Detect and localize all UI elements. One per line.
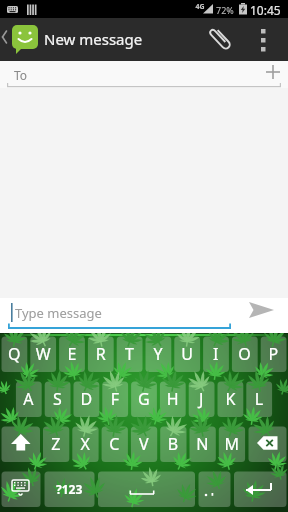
button[interactable] [160, 382, 186, 418]
button[interactable] [261, 337, 287, 373]
button[interactable] [43, 427, 69, 463]
button[interactable] [102, 382, 128, 418]
button[interactable] [199, 472, 231, 508]
button[interactable] [219, 427, 245, 463]
button[interactable] [2, 427, 41, 463]
button[interactable] [117, 337, 143, 373]
button[interactable] [189, 382, 215, 418]
button[interactable] [232, 337, 258, 373]
button[interactable] [98, 472, 195, 508]
button[interactable] [131, 427, 157, 463]
button[interactable] [30, 337, 56, 373]
button[interactable] [146, 337, 172, 373]
button[interactable] [88, 337, 114, 373]
button[interactable] [206, 18, 240, 61]
button[interactable] [45, 382, 71, 418]
button[interactable] [190, 427, 216, 463]
button[interactable] [203, 337, 229, 373]
button[interactable] [246, 382, 272, 418]
button[interactable] [234, 472, 287, 508]
staticText: New message [44, 29, 143, 49]
button[interactable] [59, 337, 85, 373]
button[interactable] [250, 18, 288, 61]
button[interactable] [131, 382, 157, 418]
button[interactable] [160, 427, 186, 463]
button[interactable]: To [0, 61, 288, 88]
button[interactable] [74, 382, 100, 418]
button[interactable] [45, 472, 95, 508]
button[interactable] [0, 18, 12, 61]
button[interactable] [2, 472, 41, 508]
button[interactable] [72, 427, 98, 463]
button[interactable] [249, 427, 287, 463]
button[interactable] [217, 382, 243, 418]
staticText: Type message [15, 304, 102, 322]
button[interactable] [2, 337, 28, 373]
staticText: To [14, 67, 28, 83]
button[interactable] [174, 337, 200, 373]
button[interactable] [102, 427, 128, 463]
button[interactable] [242, 298, 288, 331]
button[interactable] [16, 382, 42, 418]
